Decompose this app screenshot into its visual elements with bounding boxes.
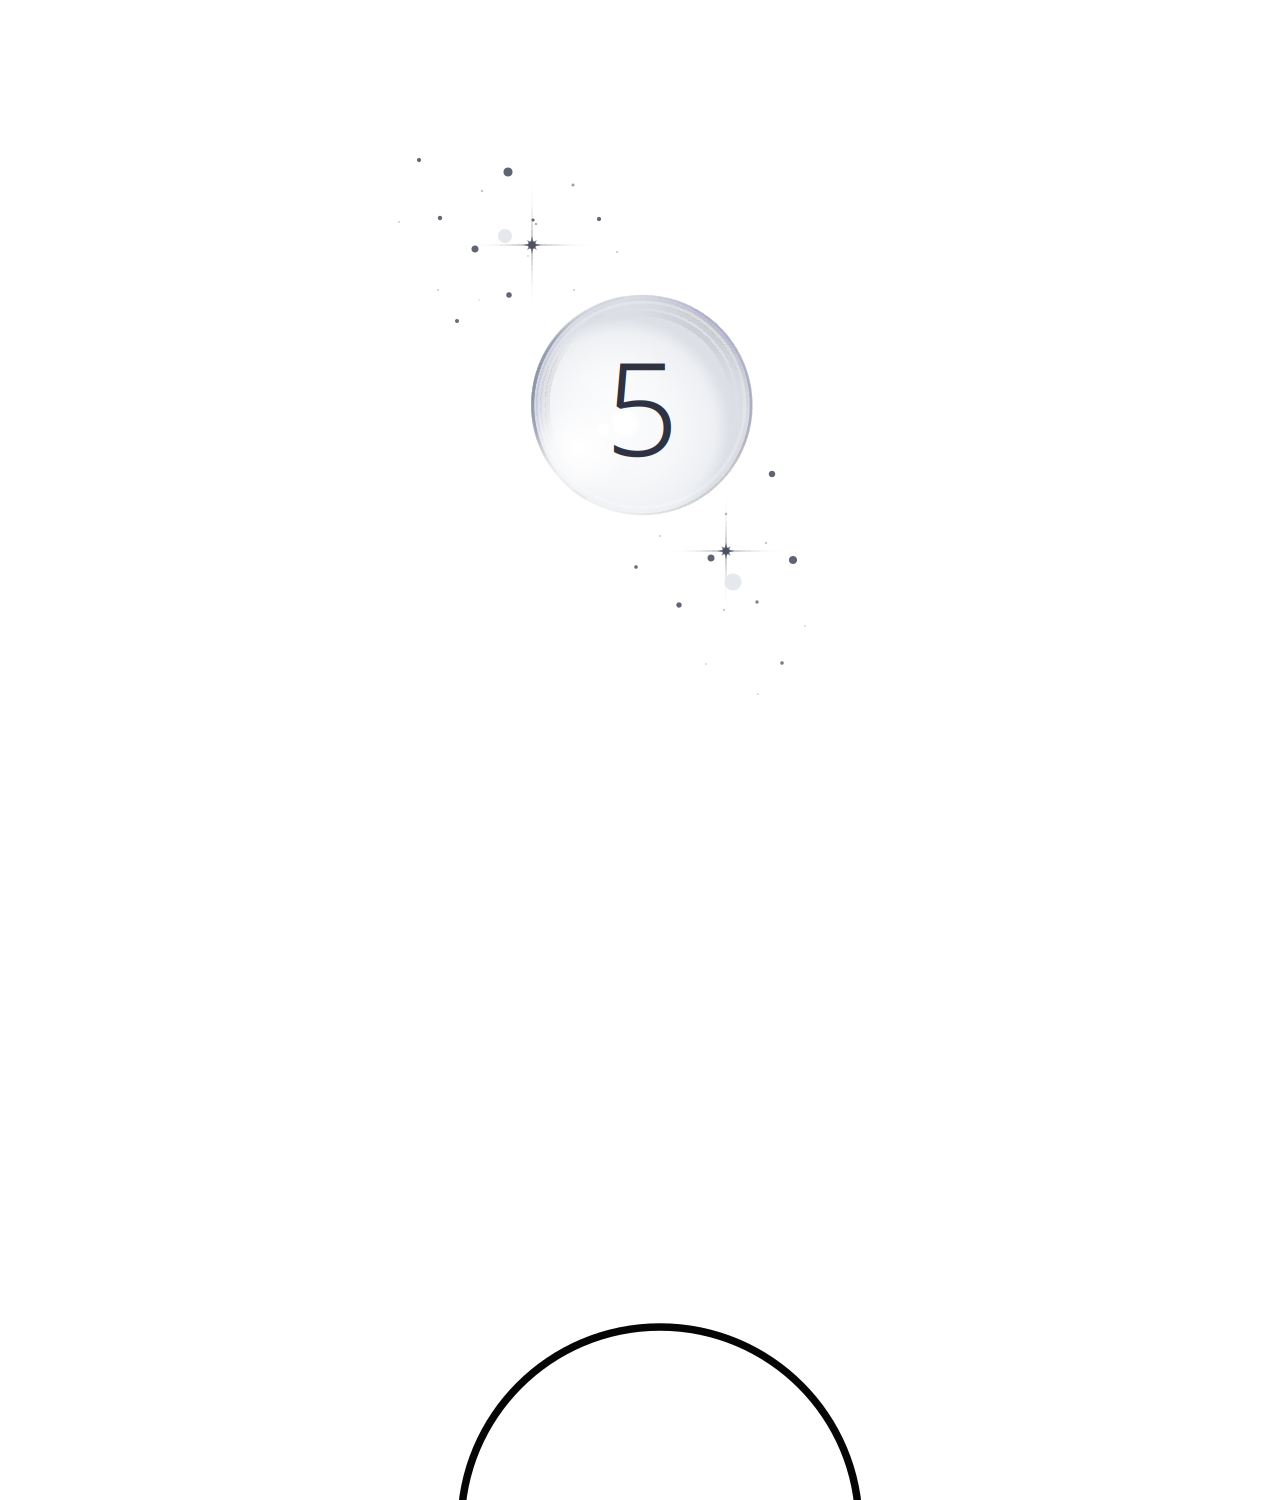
button[interactable]: Start [461, 1327, 859, 1500]
button[interactable]: 5 seconds remaining [532, 295, 752, 515]
staticText: 5 [605, 320, 679, 492]
